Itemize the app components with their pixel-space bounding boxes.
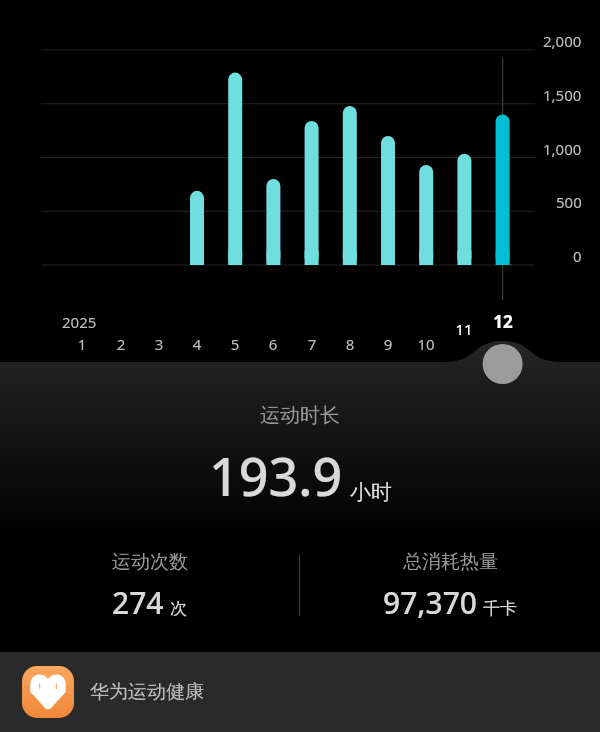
staticText: 总消耗热量 [403, 550, 498, 574]
button[interactable]: 1 [66, 334, 98, 354]
button[interactable]: 9 [372, 334, 404, 354]
staticText: 2,000 [543, 31, 582, 51]
staticText: 华为运动健康 [90, 680, 204, 704]
button[interactable]: 11 [448, 319, 480, 339]
staticText: 次 [170, 598, 187, 619]
staticText: 小时 [350, 479, 392, 505]
button[interactable]: 3 [143, 334, 175, 354]
staticText: 运动时长 [260, 403, 340, 428]
button[interactable]: 总消耗热量 [300, 550, 600, 623]
staticText: 1,000 [543, 139, 582, 159]
staticText: 500 [556, 192, 582, 212]
staticText: 274 [112, 582, 164, 623]
other: 华为运动健康 [22, 666, 74, 718]
staticText: 193.9 [209, 440, 343, 511]
staticText: 1,500 [543, 85, 582, 105]
button[interactable]: 12 [487, 310, 519, 333]
button[interactable]: 6 [257, 334, 289, 354]
button[interactable]: 10 [410, 334, 442, 354]
button[interactable]: 5 [219, 334, 251, 354]
button[interactable]: 华为运动健康 [0, 652, 600, 732]
button[interactable]: 4 [181, 334, 213, 354]
button[interactable]: 运动次数 [0, 550, 299, 623]
staticText: 97,370 [383, 582, 477, 623]
staticText: 0 [573, 246, 582, 266]
button[interactable]: 8 [334, 334, 366, 354]
staticText: 千卡 [483, 598, 517, 619]
staticText: 运动次数 [112, 550, 188, 574]
button[interactable]: 2 [105, 334, 137, 354]
button[interactable]: 7 [296, 334, 328, 354]
staticText: 2025 [62, 312, 97, 332]
